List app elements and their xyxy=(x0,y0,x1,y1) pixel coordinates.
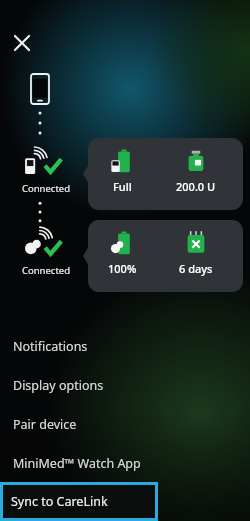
staticText: 200.0 U xyxy=(176,179,216,194)
staticText: Sync to CareLink xyxy=(11,493,108,510)
staticText: Connected xyxy=(6,182,86,195)
staticText: Notifications xyxy=(13,338,88,355)
button[interactable]: MiniMed™ Watch App xyxy=(0,444,250,483)
staticText: Connected xyxy=(6,264,86,277)
staticText: MiniMed™ Watch App xyxy=(13,455,141,472)
button[interactable]: Display options xyxy=(0,366,250,405)
button[interactable]: Pair device xyxy=(0,405,250,444)
button[interactable]: Sync to CareLink xyxy=(0,482,158,521)
staticText: 6 days xyxy=(179,261,213,276)
button[interactable]: Close xyxy=(6,27,38,59)
staticText: Full xyxy=(113,179,132,194)
button[interactable]: Full xyxy=(88,138,243,210)
button[interactable]: 100% xyxy=(88,220,243,292)
staticText: Pair device xyxy=(13,416,77,433)
button[interactable]: Notifications xyxy=(0,327,250,366)
staticText: 100% xyxy=(108,261,137,276)
staticText: Display options xyxy=(13,377,104,394)
